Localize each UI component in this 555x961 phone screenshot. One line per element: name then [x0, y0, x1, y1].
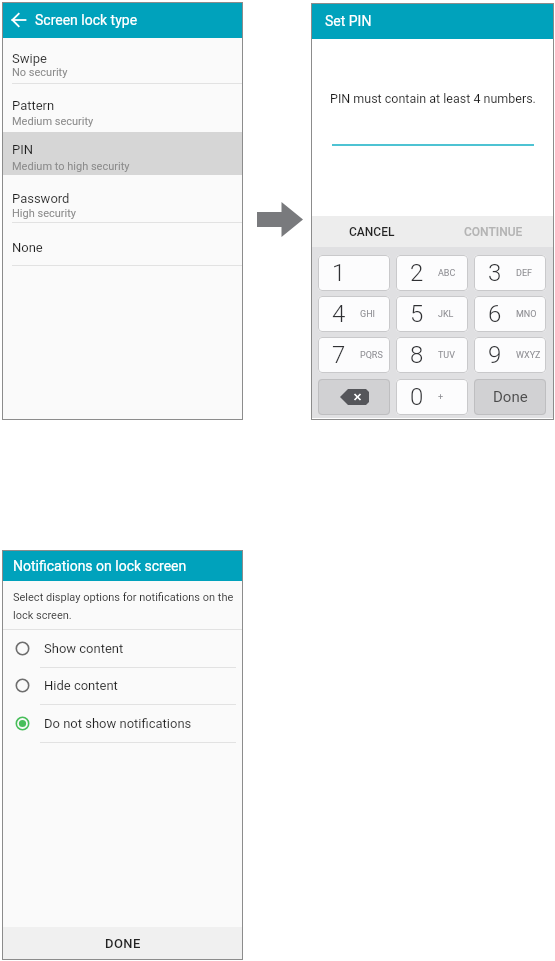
- staticText: JKL: [438, 309, 454, 320]
- button[interactable]: Show content: [2, 629, 243, 667]
- staticText: Medium security: [12, 115, 94, 128]
- staticText: Password: [12, 191, 70, 206]
- button[interactable]: [2, 83, 243, 132]
- staticText: PIN: [12, 142, 34, 157]
- button[interactable]: 8: [396, 337, 468, 373]
- staticText: Swipe: [12, 51, 47, 66]
- button[interactable]: Done: [474, 379, 546, 415]
- staticText: 7: [332, 341, 346, 369]
- button[interactable]: DONE: [2, 927, 243, 960]
- button[interactable]: 5: [396, 296, 468, 332]
- button[interactable]: [2, 132, 243, 175]
- staticText: TUV: [438, 350, 455, 361]
- staticText: 6: [488, 300, 502, 328]
- staticText: CONTINUE: [464, 225, 523, 239]
- staticText: WXYZ: [516, 350, 541, 361]
- button[interactable]: 2: [396, 255, 468, 291]
- button[interactable]: CONTINUE: [432, 216, 554, 247]
- staticText: No security: [12, 66, 68, 79]
- button[interactable]: 6: [474, 296, 546, 332]
- staticText: Medium to high security: [12, 160, 130, 173]
- staticText: Select display options for notifications…: [13, 591, 234, 604]
- staticText: 5: [410, 300, 424, 328]
- staticText: 3: [488, 259, 502, 287]
- staticText: lock screen.: [13, 609, 72, 622]
- button[interactable]: [2, 38, 243, 83]
- staticText: DONE: [105, 936, 141, 951]
- staticText: Hide content: [44, 678, 118, 693]
- staticText: None: [12, 240, 43, 255]
- button[interactable]: 0: [396, 379, 468, 415]
- button[interactable]: Hide content: [2, 667, 243, 704]
- staticText: 9: [488, 341, 502, 369]
- button[interactable]: 9: [474, 337, 546, 373]
- button[interactable]: 1: [318, 255, 390, 291]
- staticText: +: [438, 392, 444, 403]
- staticText: GHI: [360, 309, 375, 320]
- button[interactable]: CANCEL: [311, 216, 432, 247]
- button[interactable]: [2, 222, 243, 265]
- staticText: Do not show notifications: [44, 716, 192, 731]
- staticText: Show content: [44, 641, 124, 656]
- staticText: DEF: [516, 268, 532, 279]
- staticText: 1: [332, 259, 346, 287]
- staticText: CANCEL: [349, 225, 395, 239]
- staticText: 8: [410, 341, 424, 369]
- button[interactable]: 4: [318, 296, 390, 332]
- staticText: Screen lock type: [35, 12, 138, 28]
- staticText: High security: [12, 207, 77, 220]
- staticText: ABC: [438, 268, 456, 279]
- staticText: PQRS: [360, 350, 383, 361]
- staticText: 2: [410, 259, 424, 287]
- staticText: Set PIN: [325, 13, 372, 29]
- staticText: PIN must contain at least 4 numbers.: [330, 91, 536, 106]
- button[interactable]: Do not show notifications: [2, 704, 243, 742]
- button[interactable]: 7: [318, 337, 390, 373]
- button[interactable]: 3: [474, 255, 546, 291]
- staticText: Notifications on lock screen: [13, 558, 187, 574]
- button[interactable]: [318, 379, 390, 415]
- button[interactable]: [2, 175, 243, 222]
- staticText: MNO: [516, 309, 537, 320]
- staticText: 0: [410, 383, 424, 411]
- staticText: Done: [493, 388, 528, 406]
- staticText: 4: [332, 300, 346, 328]
- staticText: Pattern: [12, 98, 55, 113]
